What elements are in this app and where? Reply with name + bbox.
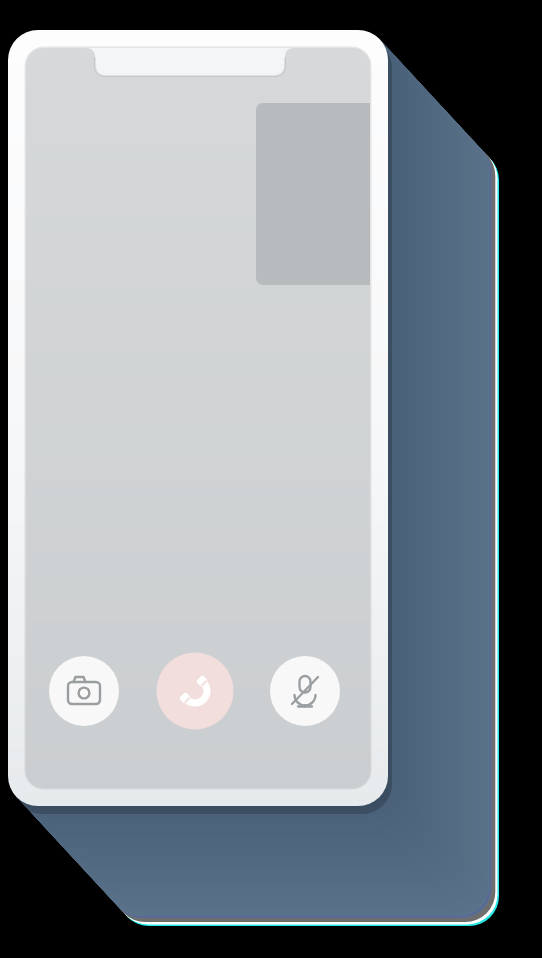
button[interactable]: End call [157, 653, 234, 730]
button[interactable]: Turn camera off [49, 656, 119, 726]
button[interactable]: Unmute microphone [270, 656, 340, 726]
